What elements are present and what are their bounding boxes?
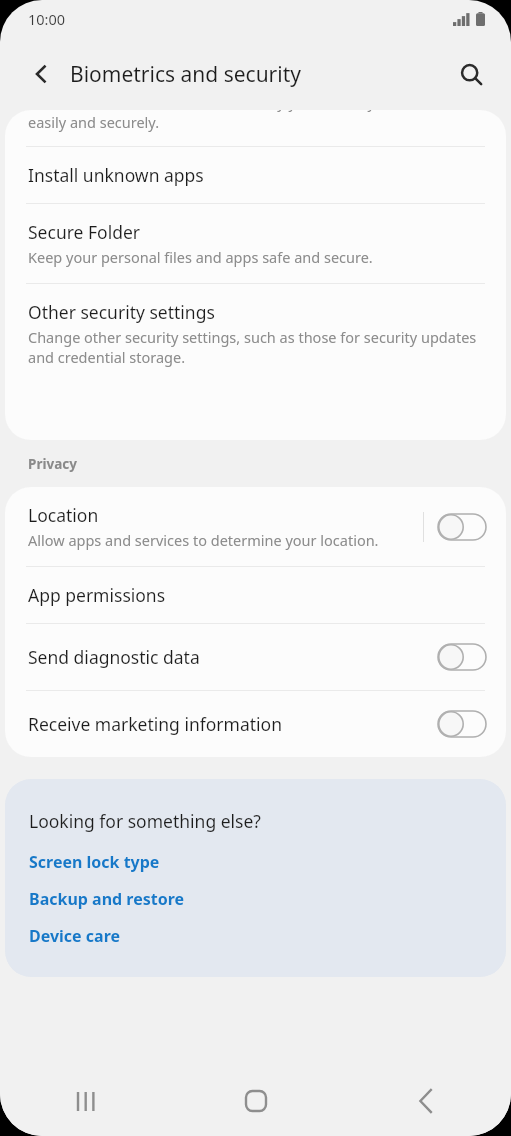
button[interactable]: Back (341, 1066, 511, 1136)
staticText: Backup and restore (29, 888, 185, 910)
button[interactable]: Screen lock type (29, 851, 160, 873)
staticText: Send diagnostic data (28, 645, 200, 669)
button[interactable]: Toggle (436, 640, 488, 674)
staticText: Location (28, 503, 99, 527)
button[interactable]: Home (171, 1066, 341, 1136)
staticText: Allow apps and services to determine you… (28, 530, 379, 550)
button[interactable]: Location (5, 487, 506, 566)
button[interactable]: Send diagnostic data (5, 624, 506, 690)
staticText: Device care (29, 925, 121, 947)
staticText: 10:00 (28, 9, 66, 29)
staticText: Biometrics and security (70, 60, 301, 89)
staticText: Secure Folder (28, 220, 141, 244)
button[interactable]: Recents (0, 1066, 171, 1136)
button[interactable]: Search (449, 52, 493, 96)
staticText: Install unknown apps (28, 163, 204, 187)
button[interactable]: Toggle (436, 707, 488, 741)
staticText: Keep your personal files and apps safe a… (28, 247, 373, 267)
button[interactable]: Backup and restore (29, 888, 185, 910)
button[interactable]: Secure Folder (5, 204, 506, 283)
staticText: Screen lock type (29, 851, 160, 873)
button[interactable]: Toggle (436, 510, 488, 544)
staticText: easily and securely. (28, 112, 160, 132)
staticText: Other security settings (28, 300, 215, 324)
staticText: Looking for something else? (29, 809, 261, 833)
button[interactable]: Install unknown apps (5, 147, 506, 203)
button[interactable]: Back (20, 53, 62, 95)
staticText: Receive marketing information (28, 712, 283, 736)
button[interactable]: Device care (29, 925, 121, 947)
button[interactable]: Receive marketing information (5, 691, 506, 757)
button[interactable]: Other security settings (5, 284, 506, 384)
staticText: Change other security settings, such as … (28, 327, 478, 368)
button[interactable]: App permissions (5, 567, 506, 623)
staticText: Use biometric authentication to verify y… (28, 110, 375, 112)
staticText: App permissions (28, 583, 166, 607)
staticText: Privacy (28, 455, 77, 473)
